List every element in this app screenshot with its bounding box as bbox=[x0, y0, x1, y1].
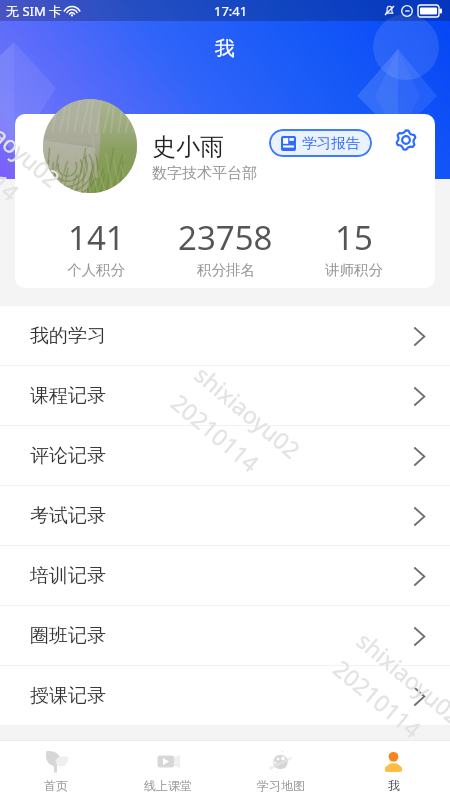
staticText: 15 bbox=[335, 215, 373, 260]
button[interactable]: 圈班记录 bbox=[0, 606, 450, 666]
button[interactable]: Settings bbox=[391, 125, 420, 154]
staticText: 141 bbox=[68, 215, 125, 260]
button[interactable]: 我的学习 bbox=[0, 306, 450, 366]
button[interactable]: 学习地图 bbox=[224, 741, 337, 800]
staticText: 培训记录 bbox=[30, 564, 106, 588]
staticText: 23758 bbox=[178, 215, 273, 260]
staticText: shixiaoyu02 bbox=[189, 358, 307, 464]
staticText: 授课记录 bbox=[30, 684, 106, 708]
staticText: 考试记录 bbox=[30, 504, 106, 528]
staticText: 圈班记录 bbox=[30, 624, 106, 648]
button[interactable]: 授课记录 bbox=[0, 666, 450, 726]
staticText: 学习地图 bbox=[257, 778, 305, 793]
staticText: 首页 bbox=[44, 778, 68, 793]
staticText: 我 bbox=[388, 778, 400, 793]
button[interactable]: 考试记录 bbox=[0, 486, 450, 546]
staticText: shixiaoyu02 bbox=[351, 624, 450, 730]
staticText: 学习报告 bbox=[302, 134, 360, 152]
staticText: 20210114 bbox=[327, 653, 428, 744]
staticText: 我的学习 bbox=[30, 324, 106, 348]
staticText: 讲师积分 bbox=[325, 261, 383, 279]
button[interactable]: 课程记录 bbox=[0, 366, 450, 426]
staticText: 积分排名 bbox=[197, 261, 255, 279]
staticText: 17:41 bbox=[214, 2, 248, 20]
staticText: 我 bbox=[215, 36, 235, 61]
staticText: 评论记录 bbox=[30, 444, 106, 468]
staticText: 数字技术平台部 bbox=[152, 164, 257, 183]
button[interactable]: 学习报告 bbox=[269, 129, 372, 157]
button[interactable]: 首页 bbox=[0, 741, 112, 800]
staticText: shixiaoyu02 bbox=[0, 87, 67, 193]
staticText: 20210114 bbox=[165, 387, 266, 478]
button[interactable]: 评论记录 bbox=[0, 426, 450, 486]
staticText: 史小雨 bbox=[152, 132, 224, 162]
button[interactable]: 我 bbox=[337, 741, 450, 800]
button[interactable]: 线上课堂 bbox=[112, 741, 224, 800]
staticText: 线上课堂 bbox=[144, 778, 192, 793]
button[interactable]: 培训记录 bbox=[0, 546, 450, 606]
staticText: 课程记录 bbox=[30, 384, 106, 408]
staticText: 20210114 bbox=[0, 116, 26, 207]
staticText: 无 SIM 卡 bbox=[6, 2, 63, 20]
staticText: 个人积分 bbox=[67, 261, 125, 279]
